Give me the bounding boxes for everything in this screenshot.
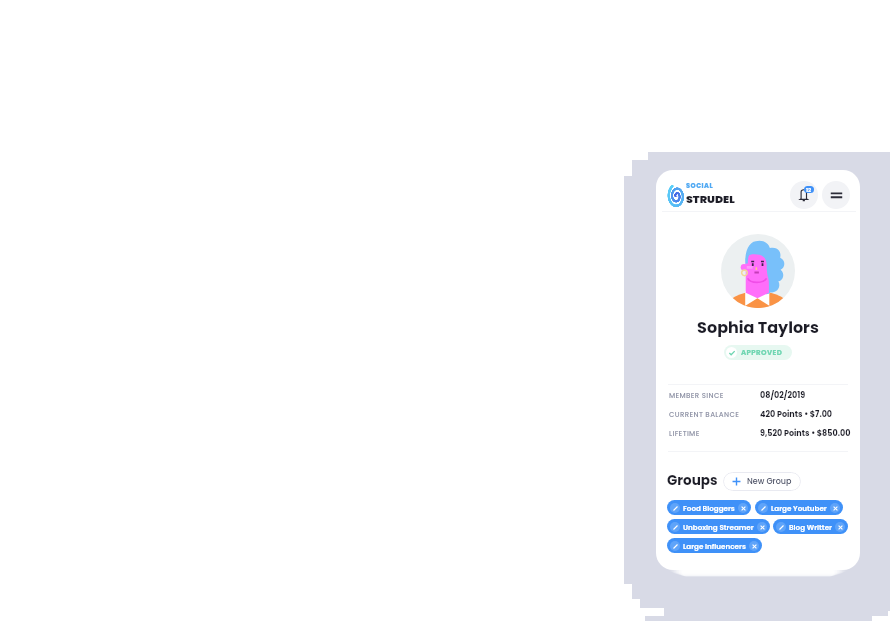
button[interactable]: Remove Large Youtuber xyxy=(830,503,840,513)
button[interactable]: Remove Unboxing Streamer xyxy=(757,522,767,532)
button[interactable]: Edit Food Bloggers xyxy=(667,500,751,515)
staticText: STRUDEL xyxy=(686,191,735,206)
staticText: 420 Points • $7.00 xyxy=(760,409,833,420)
button[interactable]: Menu xyxy=(822,181,850,209)
staticText: 9,520 Points • $850.00 xyxy=(760,428,851,439)
button[interactable]: Edit Blog Writter xyxy=(773,519,848,534)
staticText: Blog Writter xyxy=(789,522,832,532)
staticText: 12 xyxy=(806,186,812,193)
button[interactable]: APPROVED xyxy=(724,345,792,360)
button[interactable]: Remove Blog Writter xyxy=(835,522,845,532)
staticText: Large Youtuber xyxy=(771,503,827,513)
button[interactable]: Edit Food Bloggers xyxy=(670,503,680,513)
button[interactable]: Edit Blog Writter xyxy=(776,522,786,532)
staticText: LIFETIME xyxy=(669,429,700,439)
button[interactable]: Profile photo xyxy=(721,234,795,308)
staticText: Large Influencers xyxy=(683,541,746,551)
button[interactable]: Remove Food Bloggers xyxy=(738,503,748,513)
staticText: New Group xyxy=(747,476,792,487)
staticText: APPROVED xyxy=(741,348,783,358)
button[interactable]: Edit Large Youtuber xyxy=(755,500,843,515)
button[interactable]: New Group xyxy=(723,472,801,491)
button[interactable]: Notifications xyxy=(790,181,818,209)
button[interactable]: Edit Large Influencers xyxy=(667,538,762,553)
button[interactable]: Remove Large Influencers xyxy=(749,541,759,551)
button[interactable]: Edit Large Influencers xyxy=(670,541,680,551)
staticText: Groups xyxy=(667,471,718,490)
button[interactable]: Edit Unboxing Streamer xyxy=(667,519,770,534)
staticText: Unboxing Streamer xyxy=(683,522,754,532)
staticText: CURRENT BALANCE xyxy=(669,410,740,420)
button[interactable]: Edit Large Youtuber xyxy=(758,503,768,513)
staticText: 08/02/2019 xyxy=(760,390,806,401)
staticText: Food Bloggers xyxy=(683,503,735,513)
staticText: MEMBER SINCE xyxy=(669,391,724,401)
staticText: Sophia Taylors xyxy=(656,316,860,338)
button[interactable]: Edit Unboxing Streamer xyxy=(670,522,680,532)
staticText: SOCIAL xyxy=(686,181,714,190)
